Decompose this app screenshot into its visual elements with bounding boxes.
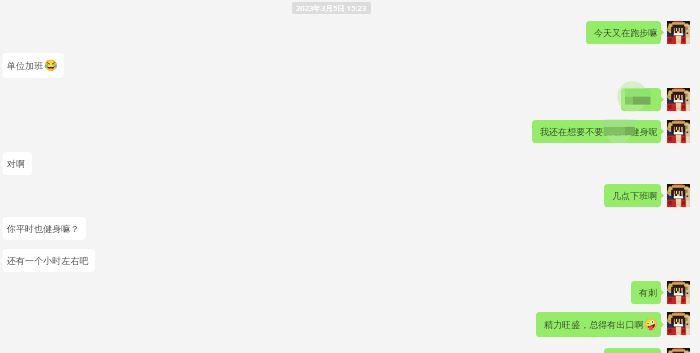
button[interactable]: 几点下班啊: [604, 184, 664, 207]
button[interactable]: Contact avatar: [667, 312, 690, 335]
button[interactable]: Contact avatar: [667, 120, 690, 143]
staticText: 对啊: [7, 158, 26, 169]
staticText: 你平时也健身嘛？: [7, 223, 80, 234]
button[interactable]: 精力旺盛，总得有出口啊: [536, 312, 664, 337]
staticText: 几点下班啊: [612, 190, 658, 201]
staticText: 单位加班: [7, 60, 44, 71]
button[interactable]: Contact avatar: [667, 184, 690, 207]
button[interactable]: 单位加班: [1, 53, 64, 78]
button[interactable]: Contact avatar: [667, 281, 690, 304]
button[interactable]: 还有一个小时左右吧: [1, 249, 95, 272]
staticText: 今天又在跑步嘛: [594, 27, 658, 38]
button[interactable]: 2023年3月5日 15:23: [292, 2, 371, 14]
staticText: 我还在想要不要去楼下健身呢: [540, 126, 658, 137]
staticText: 有刺: [639, 287, 658, 298]
staticText: 还有一个小时左右吧: [7, 255, 89, 266]
button[interactable]: 你平时也健身嘛？: [1, 217, 86, 240]
staticText: 精力旺盛，总得有出口啊: [544, 319, 644, 330]
button[interactable]: 对啊: [1, 152, 32, 175]
button[interactable]: Contact avatar: [667, 88, 690, 111]
button[interactable]: Contact avatar: [667, 348, 690, 353]
button[interactable]: 那挺好的呀: [604, 348, 664, 353]
button[interactable]: 今天又在跑步嘛: [586, 21, 664, 44]
staticText: 2023年3月5日 15:23: [296, 3, 367, 13]
button[interactable]: [621, 88, 664, 111]
staticText: 😂: [44, 59, 58, 72]
button[interactable]: Contact avatar: [667, 21, 690, 44]
button[interactable]: 有刺: [631, 281, 664, 304]
button[interactable]: 我还在想要不要去楼下健身呢: [532, 120, 664, 143]
staticText: 🤪: [644, 318, 658, 331]
